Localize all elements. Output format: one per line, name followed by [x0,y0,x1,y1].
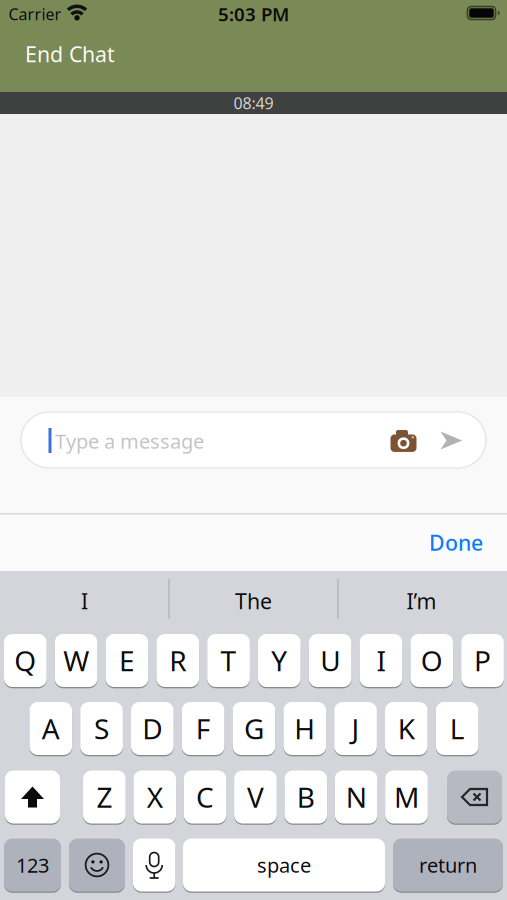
staticText: R [169,642,186,679]
button[interactable]: Y [258,633,301,688]
button[interactable]: Camera [383,421,423,461]
button[interactable]: H [283,701,326,756]
button[interactable]: Done [393,520,483,564]
staticText: C [196,778,214,816]
staticText: M [394,778,419,816]
button[interactable]: C [184,769,226,824]
staticText: Y [271,642,287,679]
staticText: return [419,852,477,878]
staticText: L [450,710,465,747]
staticText: 123 [16,852,49,878]
button[interactable]: W [55,633,97,688]
button[interactable]: O [410,633,453,688]
button[interactable]: M [385,769,428,824]
button[interactable]: J [334,701,377,756]
staticText: S [94,710,109,747]
button[interactable]: P [461,633,504,688]
staticText: J [351,710,359,747]
button[interactable]: X [133,769,176,824]
staticText: Done [429,528,483,557]
button[interactable]: A [29,701,72,756]
button[interactable]: D [131,701,174,756]
staticText: P [474,642,491,679]
button[interactable]: Dictate [133,837,175,892]
button[interactable]: N [335,769,377,824]
staticText: Z [96,778,112,816]
button[interactable]: T [207,633,250,688]
button[interactable]: K [385,701,428,756]
button[interactable]: return [393,837,503,892]
button[interactable]: Z [83,769,126,824]
button[interactable]: S [80,701,123,756]
staticText: X [147,778,163,816]
button[interactable]: 123 [4,837,61,892]
staticText: 08:49 [233,92,273,114]
button[interactable]: R [156,633,199,688]
staticText: V [247,778,264,816]
staticText: K [398,710,415,747]
button[interactable]: V [234,769,277,824]
staticText: U [320,642,340,679]
staticText: I [81,587,88,615]
button[interactable]: space [183,837,385,892]
button[interactable]: Q [4,633,47,688]
button[interactable]: I [4,572,164,630]
button[interactable]: End Chat [25,34,185,74]
button[interactable]: Delete [447,769,502,824]
staticText: Carrier [8,3,61,25]
staticText: Type a message [55,428,204,454]
button[interactable]: Emoji [69,837,125,892]
button[interactable]: I [360,633,402,688]
button[interactable]: I’m [341,572,501,630]
staticText: A [42,710,60,747]
staticText: D [142,710,162,747]
staticText: space [257,852,311,878]
staticText: O [421,642,443,679]
staticText: I [376,642,385,679]
button[interactable]: Send [433,420,469,460]
staticText: F [196,710,211,747]
button[interactable]: Shift [5,769,60,824]
button[interactable]: E [106,633,148,688]
staticText: T [220,642,236,679]
staticText: Q [14,642,36,679]
staticText: W [63,642,89,679]
button[interactable]: G [233,701,275,756]
button[interactable]: F [182,701,224,756]
staticText: N [346,778,367,816]
staticText: E [119,642,135,679]
staticText: 5:03 PM [218,2,289,26]
staticText: I’m [406,587,436,615]
button[interactable]: U [309,633,351,688]
button[interactable]: B [284,769,327,824]
button[interactable]: The [173,572,333,630]
staticText: B [297,778,315,816]
staticText: End Chat [25,40,115,68]
staticText: G [244,710,264,747]
staticText: H [294,710,315,747]
button[interactable]: L [436,701,478,756]
staticText: The [235,587,272,615]
